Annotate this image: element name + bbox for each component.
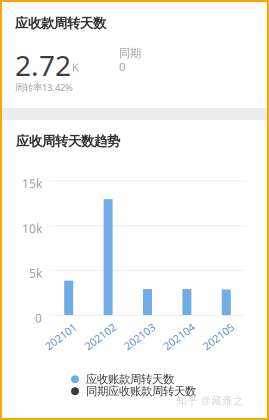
- staticText: 0: [119, 59, 125, 74]
- staticText: 202102: [82, 329, 118, 344]
- staticText: 202101: [43, 329, 79, 344]
- staticText: 0: [35, 310, 42, 326]
- staticText: 202103: [121, 329, 157, 344]
- staticText: K: [72, 60, 79, 74]
- staticText: 202105: [200, 329, 236, 344]
- staticText: 2.72: [15, 46, 71, 84]
- staticText: 应收周转天数趋势: [16, 133, 120, 150]
- staticText: 15k: [22, 175, 42, 192]
- staticText: 应收账款周转天数: [86, 372, 174, 386]
- staticText: 5k: [29, 265, 42, 281]
- staticText: 周转率13.42%: [15, 81, 73, 94]
- staticText: 应收款周转天数: [15, 15, 106, 32]
- staticText: 同期应收账款周转天数: [86, 384, 196, 398]
- staticText: 10k: [22, 220, 42, 237]
- staticText: 同期: [119, 46, 141, 60]
- staticText: 202104: [161, 329, 197, 344]
- staticText: 知乎 @藏雍之: [176, 393, 244, 407]
